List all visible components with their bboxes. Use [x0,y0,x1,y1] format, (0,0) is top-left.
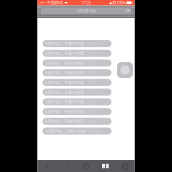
button[interactable]: 2.用户名：子账户内容 [42,50,111,57]
button[interactable]: Share [76,160,96,172]
staticText: ⟳ [126,8,130,14]
button[interactable]: Tabs [115,160,134,172]
button[interactable]: 10.用户名：子账户内容 [42,127,111,135]
button[interactable]: 172.20.10.6 [40,7,131,16]
staticText: 8.用户名：子账户内容 [45,109,84,114]
staticText: 4.用户名：子账户内容 [45,70,84,75]
button[interactable]: 1.用户名：子账户内容 [42,40,111,47]
staticText: 中国移动 [47,0,63,5]
button[interactable]: 7.用户名：子账户内容 [42,98,111,105]
button[interactable]: Bookmarks [96,160,115,172]
button[interactable]: 8.用户名：子账户内容 [42,108,111,115]
staticText: 6.用户名：子账户内容 [45,89,84,95]
staticText: 5.用户名：子账户内容 [45,80,84,85]
staticText: 3.用户名：子账户内容 [45,60,84,66]
staticText: 17:23 [81,0,90,5]
staticText: 100% [116,0,125,5]
button[interactable]: 9.用户名：子账户内容 [42,118,111,125]
button[interactable]: Menu [117,62,133,78]
button[interactable]: 5.用户名：子账户内容 [42,79,111,86]
button[interactable]: 4.用户名：子账户内容 [42,69,111,76]
staticText: 1.用户名：子账户内容 [45,41,84,46]
staticText: 7.用户名：子账户内容 [45,99,84,104]
staticText: 2.用户名：子账户内容 [45,51,84,56]
staticText: 172.20.10.6 [76,8,95,13]
staticText: 10.用户名：子账户内容 [45,128,86,134]
staticText: 9.用户名：子账户内容 [45,119,84,124]
button[interactable]: 6.用户名：子账户内容 [42,89,111,96]
button[interactable]: 3.用户名：子账户内容 [42,59,111,66]
